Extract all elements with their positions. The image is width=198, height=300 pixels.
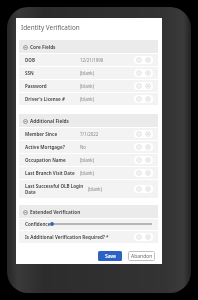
button[interactable]: Member Since: [19, 127, 158, 140]
button[interactable]: Abandon: [128, 251, 155, 261]
staticText: Core Fields: [30, 44, 56, 50]
button[interactable]: SSN: [19, 66, 158, 79]
button[interactable]: Approve: [136, 57, 142, 63]
button[interactable]: Reject: [145, 96, 151, 102]
staticText: (blank): [80, 157, 94, 163]
staticText: Member Since: [25, 131, 81, 137]
button[interactable]: Reject: [145, 83, 151, 89]
button[interactable]: DOB: [19, 53, 158, 66]
button[interactable]: Approve: [136, 96, 142, 102]
staticText: 12/21/1996: [80, 57, 104, 63]
button[interactable]: Reject: [145, 131, 151, 137]
button[interactable]: Driver's License #: [19, 92, 158, 105]
button[interactable]: Last Branch Visit Date: [19, 166, 158, 179]
button[interactable]: Reject: [145, 186, 151, 192]
staticText: Additional Fields: [30, 118, 69, 124]
button[interactable]: Is Additional Verification Required? *: [19, 230, 158, 243]
staticText: 7/1/2022: [80, 131, 99, 137]
button[interactable]: Approve: [136, 170, 142, 176]
button[interactable]: Reject: [145, 170, 151, 176]
button[interactable]: Reject: [145, 144, 151, 150]
button[interactable]: Occupation Name: [19, 153, 158, 166]
staticText: Extended Verification: [30, 209, 81, 215]
staticText: Driver's License #: [25, 96, 81, 102]
button[interactable]: Approve: [136, 234, 142, 240]
staticText: Password: [25, 83, 81, 89]
staticText: Save: [105, 253, 116, 260]
button[interactable]: Password: [19, 79, 158, 92]
staticText: Occupation Name: [25, 157, 81, 163]
staticText: SSN: [25, 70, 81, 76]
staticText: DOB: [25, 57, 81, 63]
button[interactable]: Last Successful OLB Login Date: [19, 179, 158, 198]
button[interactable]: Reject: [145, 157, 151, 163]
staticText: (blank): [80, 170, 94, 176]
staticText: (blank): [80, 70, 94, 76]
button[interactable]: Approve: [136, 83, 142, 89]
button[interactable]: Approve: [136, 131, 142, 137]
button[interactable]: Reject: [145, 70, 151, 76]
button[interactable]: Reject: [145, 57, 151, 63]
button[interactable]: Approve: [136, 144, 142, 150]
staticText: No: [80, 144, 86, 150]
button[interactable]: Reject: [145, 234, 151, 240]
staticText: Is Additional Verification Required? *: [25, 234, 117, 240]
button[interactable]: Approve: [136, 186, 142, 192]
staticText: (blank): [88, 186, 102, 192]
staticText: Last Branch Visit Date: [25, 170, 81, 176]
button[interactable]: [50, 220, 152, 228]
staticText: (blank): [80, 83, 94, 89]
button[interactable]: Save: [98, 251, 122, 261]
button[interactable]: Active Mortgage?: [19, 140, 158, 153]
staticText: (blank): [80, 96, 94, 102]
staticText: Last Successful OLB Login Date: [25, 183, 88, 195]
button[interactable]: Approve: [136, 70, 142, 76]
staticText: Abandon: [131, 253, 153, 260]
staticText: Active Mortgage?: [25, 144, 81, 150]
staticText: Identity Verification: [21, 23, 80, 32]
staticText: Confidence: [25, 221, 51, 227]
button[interactable]: Approve: [136, 157, 142, 163]
